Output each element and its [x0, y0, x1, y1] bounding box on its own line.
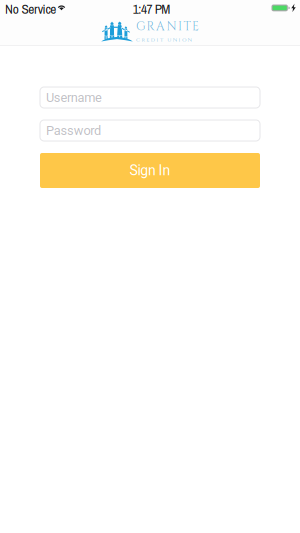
staticText: 1:47 PM — [133, 0, 170, 18]
staticText: CREDIT UNION — [136, 36, 192, 43]
staticText: Password — [46, 123, 101, 138]
staticText: Sign In — [130, 162, 170, 179]
button[interactable]: Username — [40, 87, 260, 108]
staticText: No Service — [5, 0, 56, 18]
button[interactable]: Password — [40, 120, 260, 141]
button[interactable]: Sign In — [40, 153, 260, 188]
staticText: Username — [46, 90, 102, 105]
staticText: GRANITE — [136, 19, 199, 35]
